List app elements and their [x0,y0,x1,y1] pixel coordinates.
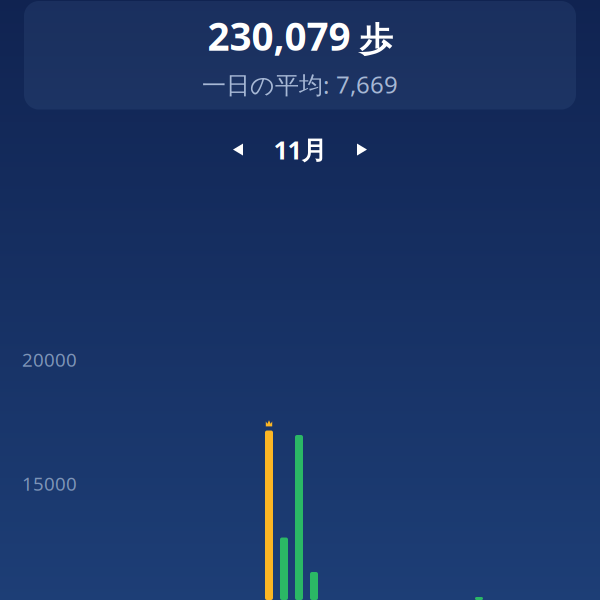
staticText: 11月 [273,133,326,166]
button[interactable]: 前の月 [216,132,260,168]
staticText: 一日の平均: [202,69,329,101]
staticText: 15000 [22,471,77,496]
staticText: 230,079 [207,10,350,61]
staticText: 歩 [359,19,392,60]
staticText: 20000 [22,347,77,372]
staticText: 7,669 [336,68,398,100]
button[interactable]: 次の月 [340,132,384,168]
